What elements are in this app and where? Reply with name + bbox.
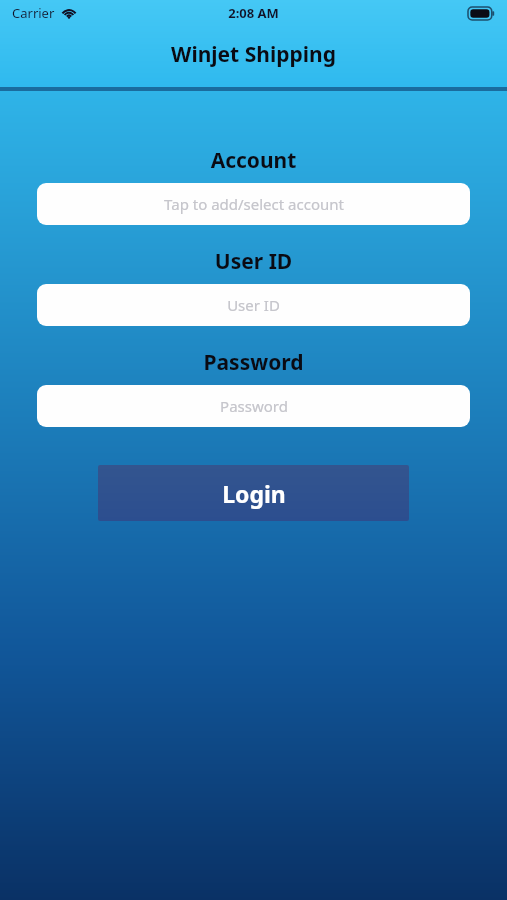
staticText: 2:08 AM <box>0 4 507 22</box>
button[interactable]: Login <box>98 465 409 521</box>
button[interactable]: User ID <box>37 284 470 326</box>
button[interactable]: Password <box>37 385 470 427</box>
staticText: Account <box>0 146 507 175</box>
staticText: User ID <box>0 247 507 276</box>
staticText: Tap to add/select account <box>164 194 344 214</box>
staticText: Carrier <box>12 4 55 22</box>
staticText: Login <box>222 478 286 509</box>
staticText: Winjet Shipping <box>0 40 507 69</box>
staticText: User ID <box>227 295 280 315</box>
button[interactable]: Tap to add/select account <box>37 183 470 225</box>
staticText: Password <box>220 396 288 416</box>
staticText: Password <box>0 348 507 377</box>
